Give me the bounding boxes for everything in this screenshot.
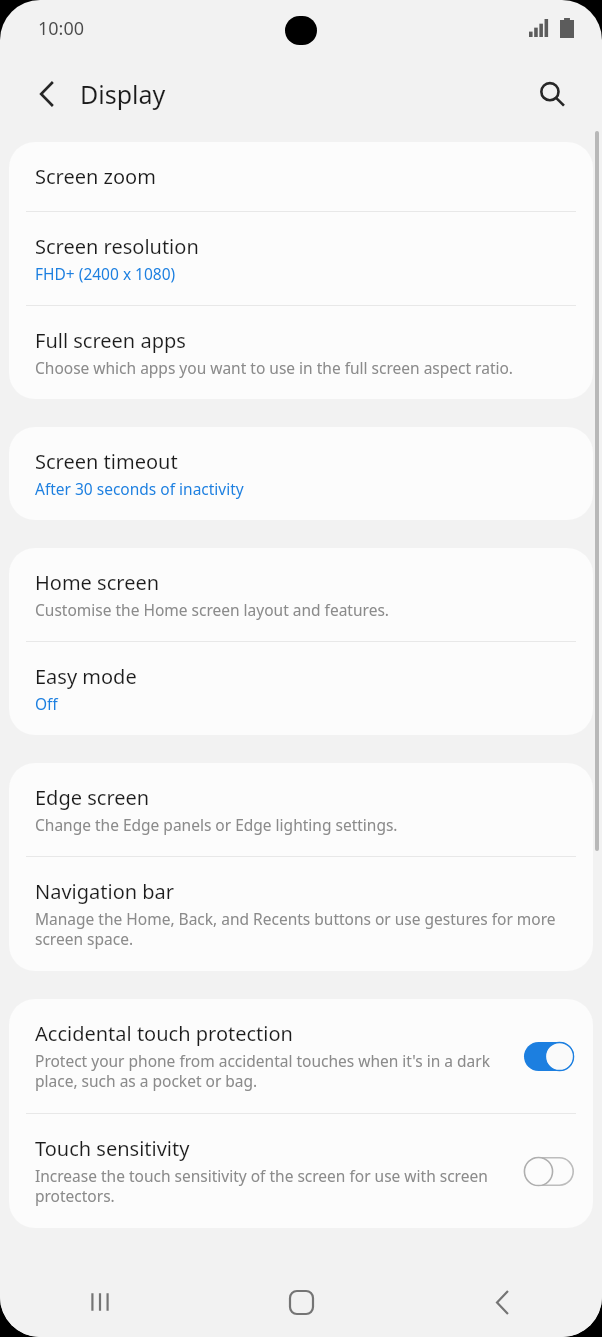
staticText: After 30 seconds of inactivity [35, 478, 244, 499]
button[interactable]: Home screen [9, 548, 593, 641]
button[interactable]: Toggle off [523, 1155, 575, 1187]
button[interactable]: Screen resolution [9, 212, 593, 305]
staticText: Full screen apps [35, 327, 186, 354]
staticText: Edge screen [35, 784, 150, 811]
button[interactable]: Edge screen [9, 763, 593, 856]
staticText: Increase the touch sensitivity of the sc… [35, 1165, 511, 1207]
button[interactable]: Full screen apps [9, 306, 593, 399]
staticText: Manage the Home, Back, and Recents butto… [35, 908, 575, 950]
staticText: Protect your phone from accidental touch… [35, 1050, 511, 1092]
button[interactable]: Toggle on [523, 1040, 575, 1072]
staticText: Screen zoom [35, 163, 156, 190]
staticText: Easy mode [35, 663, 137, 690]
staticText: Navigation bar [35, 878, 175, 905]
staticText: FHD+ (2400 x 1080) [35, 263, 176, 284]
staticText: Home screen [35, 569, 160, 596]
button[interactable]: Home [266, 1272, 336, 1332]
staticText: Customise the Home screen layout and fea… [35, 599, 389, 620]
button[interactable]: Screen zoom [9, 142, 593, 211]
button[interactable]: Search [528, 70, 576, 118]
button[interactable]: Recent apps [65, 1272, 135, 1332]
staticText: Change the Edge panels or Edge lighting … [35, 814, 398, 835]
button[interactable]: Navigate up [24, 71, 70, 117]
button[interactable]: Touch sensitivity [9, 1114, 593, 1228]
button[interactable]: Screen timeout [9, 427, 593, 520]
staticText: Choose which apps you want to use in the… [35, 357, 514, 378]
staticText: Screen resolution [35, 233, 199, 260]
button[interactable]: Back [467, 1272, 537, 1332]
staticText: Accidental touch protection [35, 1020, 293, 1047]
staticText: Screen timeout [35, 448, 178, 475]
staticText: Off [35, 693, 58, 714]
button[interactable]: Easy mode [9, 642, 593, 735]
staticText: 10:00 [38, 16, 85, 41]
button[interactable]: Accidental touch protection [9, 999, 593, 1113]
button[interactable]: Navigation bar [9, 857, 593, 971]
staticText: Touch sensitivity [35, 1135, 190, 1162]
staticText: Display [80, 77, 166, 111]
